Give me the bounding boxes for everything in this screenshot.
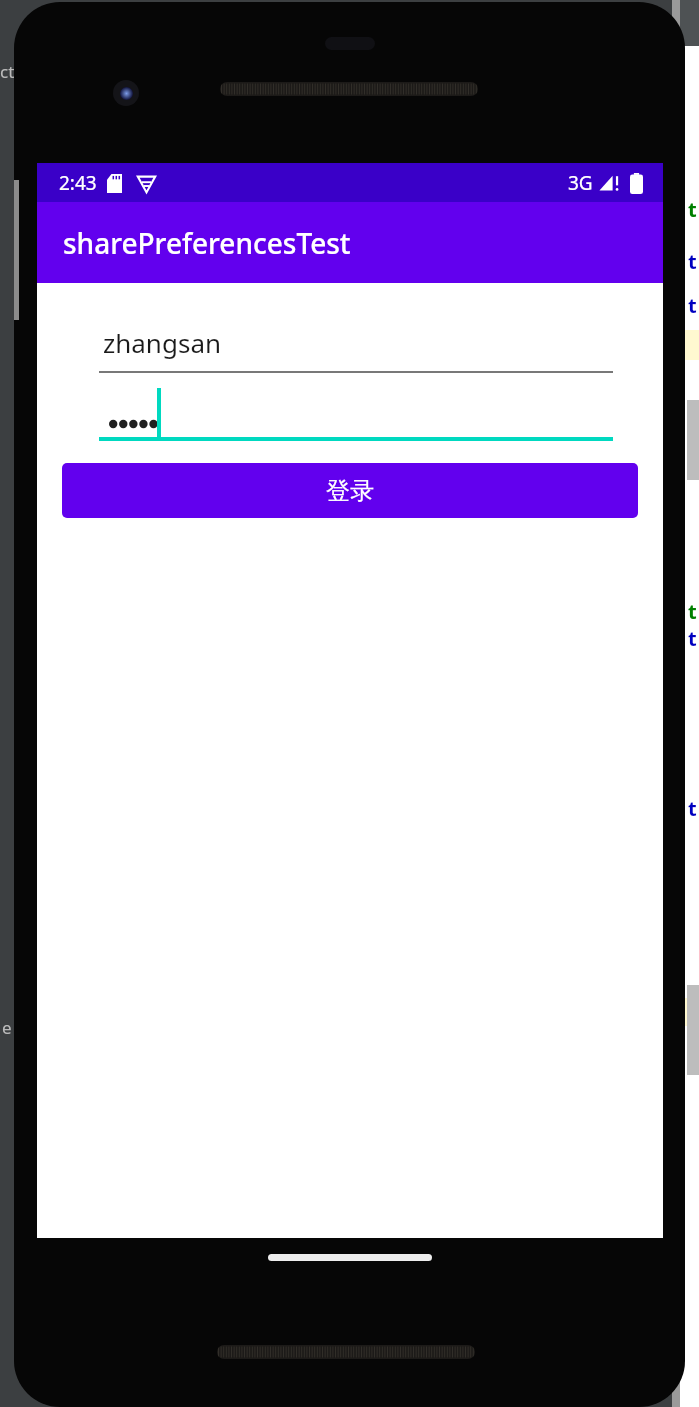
button[interactable]: 登录 xyxy=(62,463,638,518)
staticText: ct xyxy=(0,60,15,83)
staticText: 登录 xyxy=(326,476,374,506)
staticText: 3G xyxy=(568,170,593,196)
staticText: t xyxy=(688,625,697,652)
button[interactable] xyxy=(99,383,613,441)
staticText: zhangsan xyxy=(103,325,222,360)
staticText: t xyxy=(688,795,697,822)
button[interactable]: zhangsan xyxy=(99,318,613,373)
staticText: t xyxy=(688,196,697,223)
staticText: t xyxy=(688,248,697,275)
staticText: t xyxy=(688,292,697,319)
staticText: e xyxy=(2,1016,12,1039)
staticText: sharePreferencesTest xyxy=(63,224,351,262)
staticText: 2:43 xyxy=(59,170,97,196)
staticText: t xyxy=(688,598,697,625)
